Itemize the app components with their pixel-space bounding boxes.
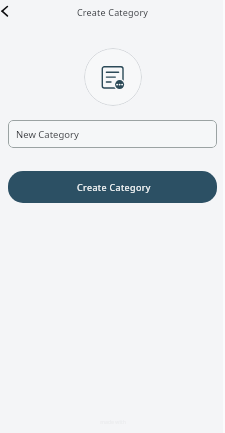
button[interactable]: Create Category [8, 171, 217, 203]
button[interactable]: New Category [8, 120, 217, 148]
staticText: New Category [16, 128, 79, 141]
button[interactable]: Back [0, 1, 22, 23]
staticText: Create Category [77, 181, 151, 193]
staticText: Create Category [77, 6, 149, 18]
button[interactable]: Category image [84, 48, 142, 106]
